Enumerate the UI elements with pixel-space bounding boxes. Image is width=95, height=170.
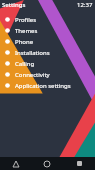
staticText: Themes	[15, 27, 38, 35]
staticText: Settings	[2, 1, 26, 9]
button[interactable]: Connectivity	[0, 69, 95, 80]
staticText: 12:37	[77, 1, 93, 9]
staticText: Profiles	[15, 16, 37, 24]
staticText: Application settings	[15, 82, 71, 90]
button[interactable]: Application settings	[0, 80, 95, 91]
button[interactable]: Profiles	[0, 14, 95, 25]
button[interactable]: Home	[31, 157, 63, 170]
button[interactable]: Installations	[0, 47, 95, 58]
button[interactable]: Calling	[0, 58, 95, 69]
button[interactable]: Themes	[0, 25, 95, 36]
staticText: Installations	[15, 49, 50, 57]
staticText: Calling	[15, 60, 35, 68]
staticText: Connectivity	[15, 71, 50, 79]
button[interactable]: Recents	[63, 157, 95, 170]
button[interactable]: Phone	[0, 36, 95, 47]
button[interactable]: Back	[0, 157, 31, 170]
staticText: Phone	[15, 38, 34, 46]
